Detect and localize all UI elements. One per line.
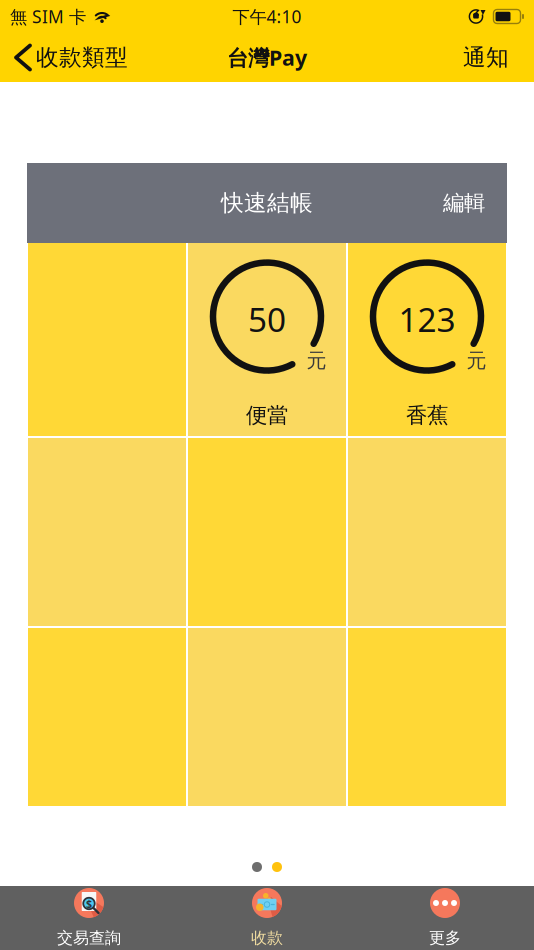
- button[interactable]: 收款類型: [0, 33, 142, 82]
- staticText: 便當: [246, 402, 288, 429]
- staticText: 通知: [463, 43, 509, 72]
- button[interactable]: 123: [348, 243, 506, 436]
- button[interactable]: 50: [188, 243, 346, 436]
- staticText: 香蕉: [406, 402, 448, 429]
- staticText: 123: [398, 296, 455, 342]
- button[interactable]: 更多: [356, 886, 534, 950]
- staticText: 50: [248, 296, 286, 342]
- staticText: 更多: [429, 928, 461, 948]
- staticText: 元: [306, 348, 326, 373]
- staticText: 編輯: [443, 190, 485, 216]
- button[interactable]: $: [0, 886, 178, 950]
- staticText: 無 SIM 卡: [10, 5, 86, 28]
- staticText: 台灣Pay: [227, 43, 307, 72]
- staticText: 收款: [251, 928, 283, 948]
- button[interactable]: 收款: [178, 886, 356, 950]
- button[interactable]: 通知: [438, 33, 534, 82]
- staticText: 收款類型: [36, 43, 128, 72]
- staticText: 交易查詢: [57, 928, 121, 948]
- staticText: 元: [466, 348, 486, 373]
- staticText: 快速結帳: [221, 189, 313, 217]
- staticText: 下午4:10: [232, 5, 301, 28]
- staticText: $: [86, 896, 92, 911]
- button[interactable]: 編輯: [421, 163, 507, 243]
